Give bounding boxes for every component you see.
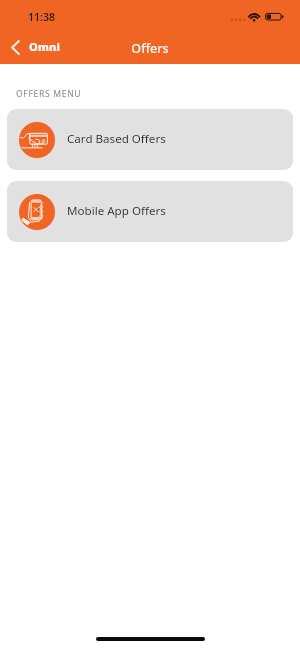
staticText: OFFERS MENU (16, 88, 82, 100)
staticText: Mobile App Offers (67, 203, 166, 219)
staticText: Card Based Offers (67, 131, 166, 147)
staticText: Offers (0, 40, 300, 57)
staticText: powered by bank (35, 48, 60, 52)
button[interactable]: Mobile App Offers (7, 181, 293, 242)
button[interactable]: Back (4, 35, 26, 59)
staticText: 11:38 (28, 10, 55, 24)
staticText: Omni (29, 39, 61, 54)
button[interactable]: Card Based Offers (7, 109, 293, 170)
